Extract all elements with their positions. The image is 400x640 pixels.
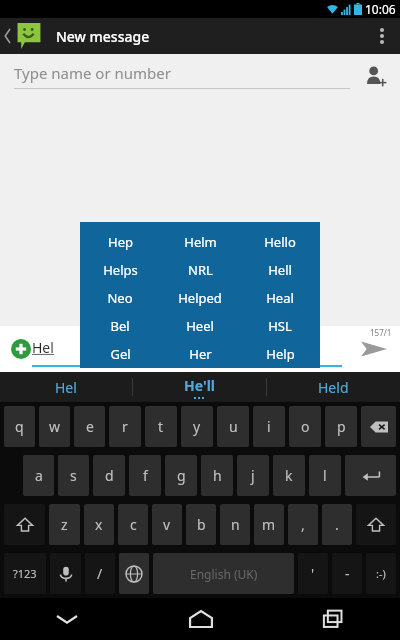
button[interactable]: r xyxy=(109,406,141,447)
button[interactable]: Shift xyxy=(356,504,396,545)
staticText: , xyxy=(301,515,305,534)
button[interactable]: q xyxy=(4,406,35,447)
button[interactable]: l xyxy=(309,455,341,496)
button[interactable]: - xyxy=(332,553,362,594)
button[interactable]: p xyxy=(325,406,357,447)
button[interactable]: English (UK) xyxy=(153,553,294,594)
staticText: j xyxy=(251,466,255,485)
button[interactable]: More options xyxy=(364,18,400,54)
staticText: o xyxy=(301,417,310,436)
button[interactable]: Neo xyxy=(80,284,160,312)
button[interactable]: Help xyxy=(240,340,320,368)
staticText: q xyxy=(15,417,24,436)
button[interactable]: Helped xyxy=(160,284,240,312)
button[interactable]: ?123 xyxy=(4,553,46,594)
button[interactable]: Back xyxy=(0,18,46,54)
staticText: Her xyxy=(189,345,212,363)
button[interactable]: Add contact xyxy=(358,59,392,93)
staticText: He'll xyxy=(184,376,215,395)
button[interactable]: HSL xyxy=(240,312,320,340)
button[interactable]: k xyxy=(273,455,305,496)
staticText: v xyxy=(163,515,171,534)
button[interactable]: d xyxy=(93,455,125,496)
button[interactable]: , xyxy=(288,504,318,545)
button[interactable]: Home xyxy=(134,598,267,640)
button[interactable]: Send xyxy=(354,329,394,369)
staticText: ' xyxy=(311,564,315,583)
staticText: e xyxy=(86,417,94,436)
button[interactable]: Backspace xyxy=(361,406,396,447)
button[interactable]: y xyxy=(181,406,213,447)
button[interactable]: n xyxy=(220,504,250,545)
staticText: Helped xyxy=(178,289,222,307)
button[interactable]: / xyxy=(85,553,115,594)
staticText: Hello xyxy=(264,233,296,251)
staticText: NRL xyxy=(188,261,213,279)
button[interactable]: g xyxy=(165,455,197,496)
button[interactable]: t xyxy=(145,406,177,447)
button[interactable]: Shift xyxy=(4,504,45,545)
button[interactable]: Bel xyxy=(80,312,160,340)
button[interactable]: a xyxy=(23,455,54,496)
button[interactable]: Heel xyxy=(160,312,240,340)
staticText: Heal xyxy=(266,289,294,307)
button[interactable]: . xyxy=(322,504,352,545)
staticText: Held xyxy=(318,378,349,397)
button[interactable]: NRL xyxy=(160,256,240,284)
button[interactable]: s xyxy=(58,455,89,496)
button[interactable]: Type name or number xyxy=(14,63,350,89)
button[interactable]: Hel xyxy=(32,338,342,367)
staticText: x xyxy=(95,515,103,534)
staticText: / xyxy=(97,564,103,583)
button[interactable]: e xyxy=(74,406,105,447)
button[interactable]: Enter xyxy=(345,455,396,496)
button[interactable]: b xyxy=(186,504,216,545)
button[interactable]: Voice input xyxy=(50,553,81,594)
button[interactable]: v xyxy=(152,504,182,545)
staticText: n xyxy=(231,515,240,534)
staticText: u xyxy=(229,417,238,436)
button[interactable]: Add attachment xyxy=(6,334,36,364)
button[interactable]: c xyxy=(118,504,148,545)
staticText: HSL xyxy=(268,317,292,335)
button[interactable]: u xyxy=(217,406,249,447)
button[interactable]: z xyxy=(49,504,80,545)
staticText: Hel xyxy=(55,378,77,397)
button[interactable]: Hel xyxy=(0,372,132,402)
button[interactable]: :-) xyxy=(366,553,396,594)
button[interactable]: He'll xyxy=(133,372,266,402)
staticText: l xyxy=(323,466,327,485)
button[interactable]: Held xyxy=(267,372,400,402)
button[interactable]: i xyxy=(253,406,285,447)
button[interactable]: Hell xyxy=(240,256,320,284)
staticText: - xyxy=(345,564,350,583)
staticText: Hep xyxy=(108,233,133,251)
button[interactable]: Hide keyboard xyxy=(0,598,134,640)
button[interactable]: Helps xyxy=(80,256,160,284)
staticText: m xyxy=(262,515,276,534)
staticText: New message xyxy=(56,27,150,46)
button[interactable]: x xyxy=(84,504,114,545)
button[interactable]: Hep xyxy=(80,227,160,256)
button[interactable]: Her xyxy=(160,340,240,368)
button[interactable]: f xyxy=(129,455,161,496)
button[interactable]: o xyxy=(289,406,321,447)
button[interactable]: Heal xyxy=(240,284,320,312)
staticText: Bel xyxy=(110,317,130,335)
button[interactable]: w xyxy=(39,406,70,447)
staticText: i xyxy=(267,417,271,436)
button[interactable]: Hello xyxy=(240,227,320,256)
button[interactable]: Recent apps xyxy=(267,598,400,640)
button[interactable]: m xyxy=(254,504,284,545)
staticText: 10:06 xyxy=(365,1,396,17)
button[interactable]: Gel xyxy=(80,340,160,368)
button[interactable]: Change language xyxy=(119,553,149,594)
staticText: h xyxy=(213,466,222,485)
button[interactable]: h xyxy=(201,455,233,496)
staticText: w xyxy=(49,417,61,436)
staticText: Heel xyxy=(186,317,214,335)
button[interactable]: j xyxy=(237,455,269,496)
staticText: g xyxy=(177,466,186,485)
button[interactable]: ' xyxy=(298,553,328,594)
button[interactable]: Helm xyxy=(160,227,240,256)
